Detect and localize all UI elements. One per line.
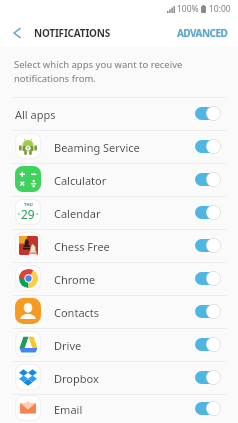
button[interactable]: Drive xyxy=(0,329,238,361)
button[interactable]: Toggle xyxy=(195,106,221,121)
button[interactable]: All apps xyxy=(0,98,238,130)
staticText: All apps xyxy=(15,107,56,122)
button[interactable]: Contacts xyxy=(0,296,238,328)
staticText: 100% xyxy=(177,3,199,15)
button[interactable]: Toggle xyxy=(195,337,221,352)
button[interactable]: Toggle xyxy=(195,205,221,220)
button[interactable]: THU xyxy=(0,197,238,229)
staticText: Calculator xyxy=(54,173,107,188)
staticText: Chrome xyxy=(54,272,96,287)
button[interactable]: ADVANCED xyxy=(165,20,238,46)
button[interactable]: Email xyxy=(0,395,238,423)
button[interactable]: Back xyxy=(9,25,25,41)
staticText: Contacts xyxy=(54,305,100,320)
staticText: NOTIFICATIONS xyxy=(34,26,111,40)
button[interactable]: Toggle xyxy=(195,271,221,286)
button[interactable]: Toggle xyxy=(195,139,221,154)
staticText: ADVANCED xyxy=(177,26,228,40)
staticText: 29 xyxy=(21,206,35,222)
staticText: THU xyxy=(24,202,33,207)
staticText: Select which apps you want to receive xyxy=(14,58,183,71)
button[interactable]: Toggle xyxy=(195,172,221,187)
button[interactable]: Chess Free xyxy=(0,230,238,262)
button[interactable]: Calculator xyxy=(0,164,238,196)
staticText: 10:00 xyxy=(209,3,231,15)
button[interactable]: Toggle xyxy=(195,304,221,319)
staticText: notifications from. xyxy=(14,72,96,85)
button[interactable]: Toggle xyxy=(195,401,221,416)
staticText: Beaming Service xyxy=(54,140,140,155)
staticText: Calendar xyxy=(54,206,101,221)
button[interactable]: Chrome xyxy=(0,263,238,295)
staticText: Dropbox xyxy=(54,371,99,386)
staticText: Chess Free xyxy=(54,239,110,254)
button[interactable]: Dropbox xyxy=(0,362,238,394)
button[interactable]: Toggle xyxy=(195,370,221,385)
staticText: Email xyxy=(54,402,83,417)
button[interactable]: Beaming Service xyxy=(0,131,238,163)
button[interactable]: Toggle xyxy=(195,238,221,253)
staticText: Drive xyxy=(54,338,82,353)
